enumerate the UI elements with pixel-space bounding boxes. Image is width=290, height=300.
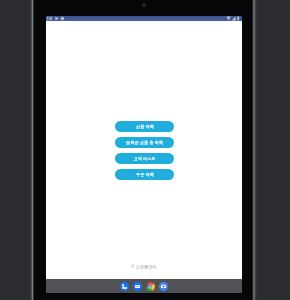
button[interactable]: Messages [133, 282, 142, 291]
button[interactable]: 등록된 상품 총 목록 [115, 137, 174, 148]
button[interactable]: 주문 목록 [115, 169, 174, 180]
staticText: 주문 목록 [136, 172, 154, 178]
staticText: 고객 리스트 [133, 156, 156, 162]
button[interactable]: Chrome [146, 282, 155, 291]
button[interactable]: 상품 목록 [115, 121, 174, 132]
button[interactable]: Phone [120, 282, 129, 291]
staticText: 등록된 상품 총 목록 [126, 140, 163, 146]
button[interactable]: 고객 리스트 [115, 153, 174, 164]
button[interactable]: Camera [159, 282, 168, 291]
staticText: 상품 목록 [136, 124, 154, 130]
staticText: © 쇼핑몰관리 [131, 264, 157, 270]
